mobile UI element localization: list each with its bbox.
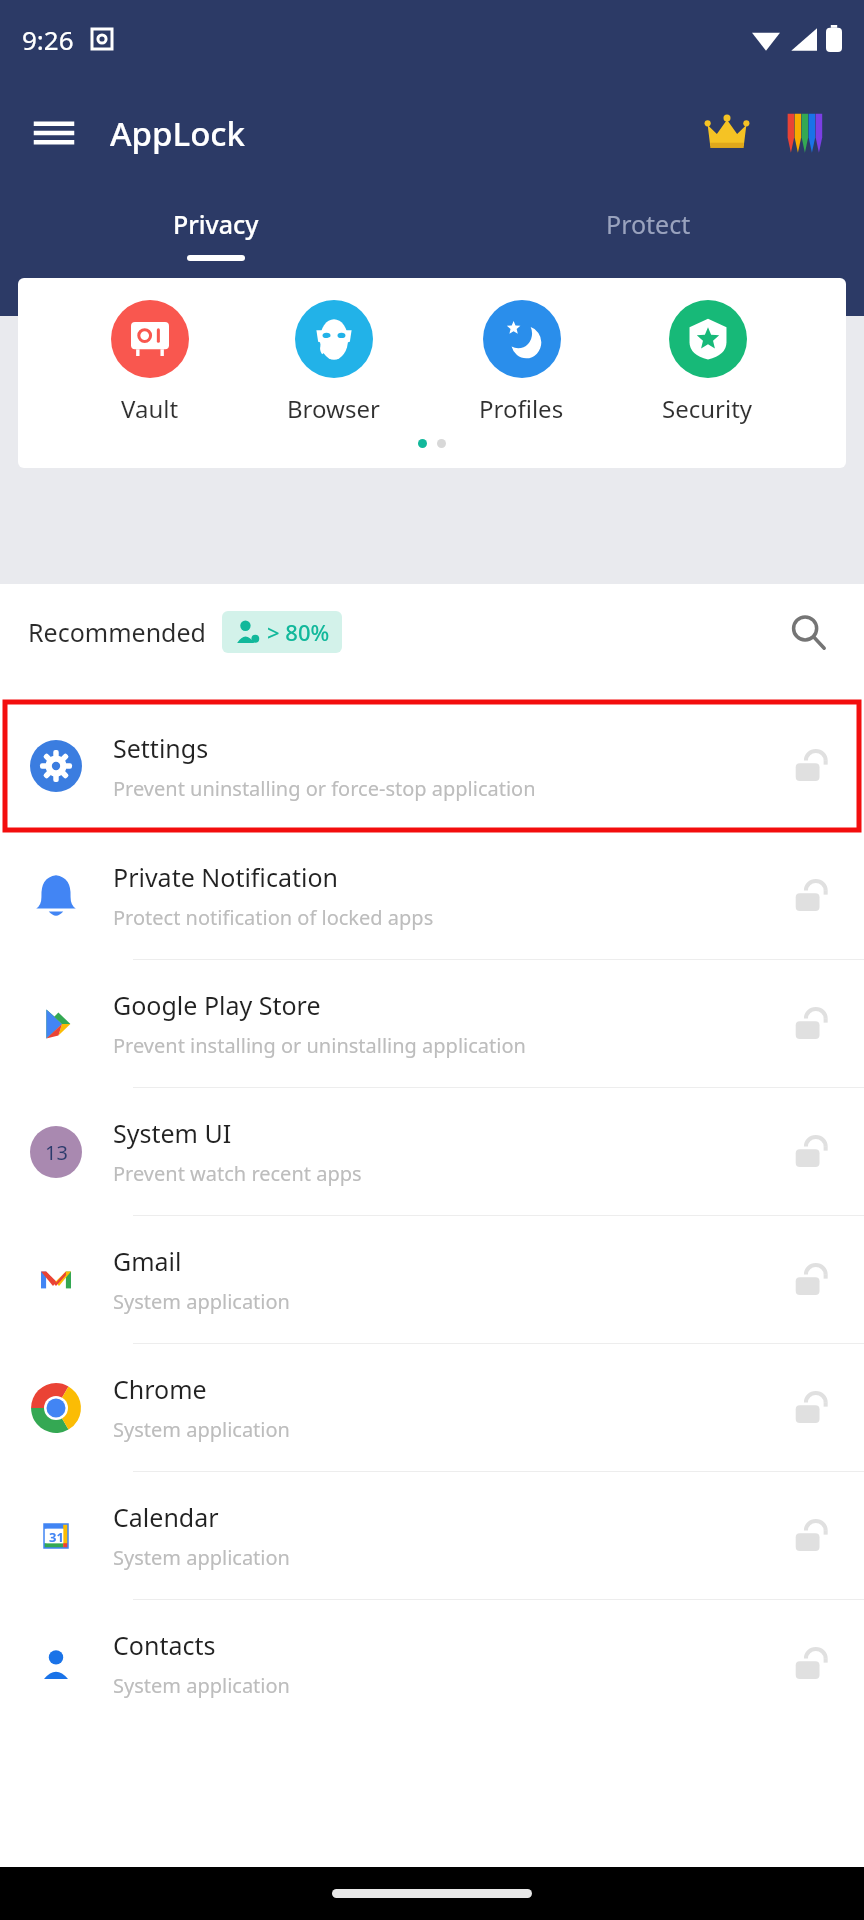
staticText: Calendar (113, 1500, 219, 1534)
button[interactable]: 31 (0, 1472, 864, 1599)
staticText: 31 (49, 1528, 64, 1546)
staticText: > 80% (267, 617, 330, 647)
staticText: Chrome (113, 1372, 207, 1406)
staticText: Prevent watch recent apps (113, 1160, 362, 1187)
staticText: Google Play Store (113, 988, 321, 1022)
button[interactable]: Settings (5, 702, 859, 830)
button[interactable]: Profiles (473, 300, 570, 425)
button[interactable]: Menu (28, 107, 80, 159)
staticText: Recommended (28, 615, 206, 649)
button[interactable]: Contacts (0, 1600, 864, 1727)
button[interactable]: Gmail (0, 1216, 864, 1343)
staticText: Vault (121, 392, 179, 425)
button[interactable]: Browser (281, 300, 386, 425)
staticText: System application (113, 1544, 290, 1571)
staticText: Gmail (113, 1244, 182, 1278)
button[interactable]: Protect (432, 188, 864, 280)
staticText: Private Notification (113, 860, 338, 894)
staticText: 9:26 (22, 22, 74, 57)
button[interactable]: VIP (698, 104, 756, 162)
staticText: Prevent installing or uninstalling appli… (113, 1032, 526, 1059)
staticText: System application (113, 1416, 290, 1443)
staticText: System UI (113, 1116, 232, 1150)
staticText: Contacts (113, 1628, 216, 1662)
button[interactable]: Privacy (0, 188, 432, 280)
staticText: Protect notification of locked apps (113, 904, 434, 931)
button[interactable]: Chrome (0, 1344, 864, 1471)
staticText: Protect (606, 207, 691, 241)
button[interactable]: Private Notification (0, 832, 864, 959)
button[interactable]: 13 (0, 1088, 864, 1215)
button[interactable]: Google Play Store (0, 960, 864, 1087)
staticText: AppLock (110, 111, 245, 156)
staticText: Prevent uninstalling or force-stop appli… (113, 775, 536, 802)
staticText: 13 (45, 1139, 68, 1166)
staticText: Privacy (173, 207, 259, 241)
staticText: System application (113, 1672, 290, 1699)
staticText: Settings (113, 731, 209, 765)
button[interactable]: Search (780, 604, 836, 660)
button[interactable]: > 80% (222, 611, 342, 653)
staticText: Browser (287, 392, 380, 425)
button[interactable]: Security (656, 300, 759, 425)
staticText: System application (113, 1288, 290, 1315)
staticText: Profiles (479, 392, 564, 425)
button[interactable]: Themes (778, 104, 836, 162)
staticText: Security (662, 392, 753, 425)
button[interactable]: Vault (105, 300, 195, 425)
